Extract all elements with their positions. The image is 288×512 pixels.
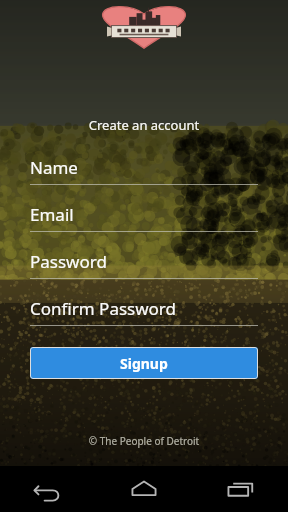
staticText: Confirm Password xyxy=(30,297,176,320)
staticText: Signup xyxy=(120,354,168,373)
button[interactable]: Password xyxy=(0,244,288,291)
staticText: Name xyxy=(30,156,78,179)
staticText: Email xyxy=(30,203,74,226)
staticText: © The People of Detroit xyxy=(0,434,288,448)
button[interactable]: Back xyxy=(0,466,96,512)
staticText: Create an account xyxy=(0,116,288,134)
button[interactable]: Name xyxy=(0,150,288,197)
staticText: Password xyxy=(30,250,107,273)
button[interactable]: Confirm Password xyxy=(0,291,288,338)
button[interactable]: Home xyxy=(96,466,192,512)
button[interactable]: Email xyxy=(0,197,288,244)
button[interactable]: Recent apps xyxy=(192,466,288,512)
button[interactable]: Signup xyxy=(30,347,258,379)
